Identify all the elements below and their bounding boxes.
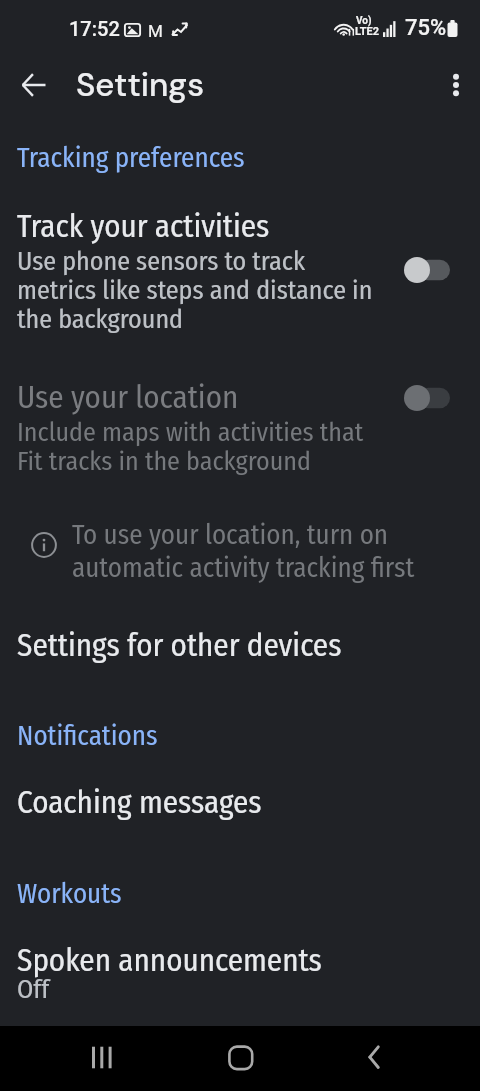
staticText: Workouts xyxy=(17,878,122,910)
button[interactable]: Track your activities xyxy=(0,208,480,336)
staticText: metrics like steps and distance in xyxy=(17,275,373,306)
staticText: 17:52 xyxy=(69,17,120,40)
button[interactable]: Toggle xyxy=(404,384,452,412)
staticText: Coaching messages xyxy=(17,784,262,821)
staticText: 75% xyxy=(405,15,447,41)
button[interactable]: Recents xyxy=(78,1032,128,1082)
staticText: automatic activity tracking first xyxy=(72,552,415,584)
button[interactable]: Toggle xyxy=(404,256,452,284)
button[interactable]: Home xyxy=(215,1032,265,1082)
staticText: Settings xyxy=(76,63,205,106)
staticText: Fit tracks in the background xyxy=(17,446,311,477)
staticText: Track your activities xyxy=(17,208,270,245)
staticText: Vo) xyxy=(356,15,372,27)
button[interactable]: Back xyxy=(352,1032,402,1082)
staticText: Include maps with activities that xyxy=(17,417,364,448)
staticText: To use your location, turn on xyxy=(72,519,389,551)
button[interactable]: More options xyxy=(433,62,479,108)
staticText: Spoken announcements xyxy=(17,942,322,979)
staticText: LTE2 xyxy=(355,25,380,38)
staticText: Use phone sensors to track xyxy=(17,246,306,277)
button[interactable]: Use your location xyxy=(0,379,480,479)
staticText: Off xyxy=(17,974,50,1005)
staticText: the background xyxy=(17,304,184,335)
staticText: M xyxy=(148,21,163,41)
staticText: Use your location xyxy=(17,379,239,416)
button[interactable]: Back xyxy=(11,62,57,108)
staticText: Settings for other devices xyxy=(17,627,342,664)
button[interactable]: Settings for other devices xyxy=(0,627,480,667)
button[interactable]: Coaching messages xyxy=(0,784,480,824)
staticText: Tracking preferences xyxy=(17,142,245,174)
button[interactable]: Spoken announcements xyxy=(0,942,480,1010)
staticText: Notifications xyxy=(17,720,158,752)
